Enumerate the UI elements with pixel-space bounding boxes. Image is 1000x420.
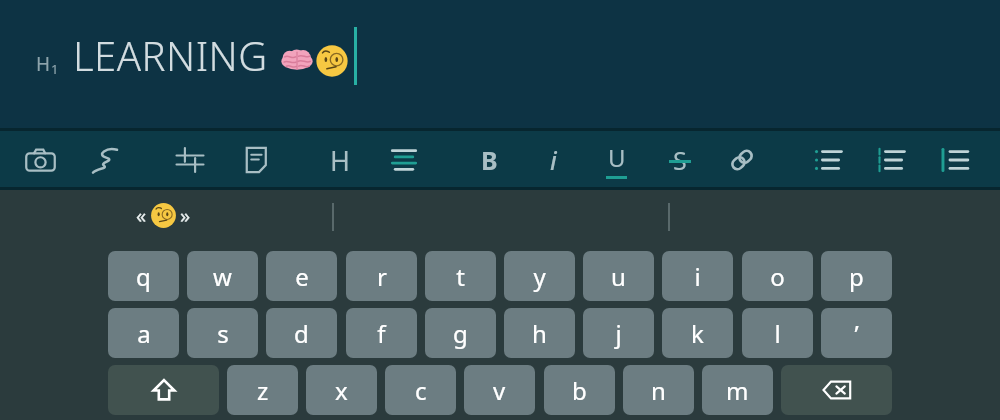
staticText: ’ [854, 317, 859, 350]
staticText: n [651, 374, 666, 407]
staticText: g [453, 317, 468, 350]
button[interactable]: k [662, 308, 733, 358]
staticText: b [572, 374, 587, 407]
button[interactable]: j [583, 308, 654, 358]
button[interactable]: u [583, 251, 654, 301]
staticText: S [673, 143, 687, 177]
staticText: m [726, 374, 749, 407]
button[interactable]: c [385, 365, 456, 415]
button[interactable]: o [742, 251, 813, 301]
button[interactable]: y [504, 251, 575, 301]
staticText: h [532, 317, 547, 350]
staticText: u [611, 260, 626, 293]
staticText: f [377, 317, 386, 350]
button[interactable]: g [425, 308, 496, 358]
button[interactable]: v [464, 365, 535, 415]
button[interactable]: Underline [590, 134, 642, 186]
button[interactable]: Backspace [781, 365, 892, 415]
button[interactable]: Link [716, 134, 768, 186]
button[interactable]: f [346, 308, 417, 358]
staticText: e [295, 260, 309, 293]
button[interactable]: m [702, 365, 773, 415]
button[interactable]: ’ [821, 308, 892, 358]
button[interactable]: Note [230, 134, 282, 186]
staticText: w [213, 260, 232, 293]
button[interactable]: e [266, 251, 337, 301]
button[interactable]: z [227, 365, 298, 415]
staticText: j [615, 317, 622, 350]
staticText: r [377, 260, 387, 293]
button[interactable]: Italic [527, 134, 579, 186]
staticText: p [849, 260, 864, 293]
staticText: H [36, 51, 51, 77]
button[interactable]: x [306, 365, 377, 415]
button[interactable]: Heading [314, 134, 366, 186]
staticText: i [550, 143, 557, 177]
button[interactable]: Bulleted list [802, 134, 854, 186]
button[interactable]: h [504, 308, 575, 358]
staticText: o [770, 260, 785, 293]
button[interactable]: a [108, 308, 179, 358]
staticText: y [533, 260, 546, 293]
button[interactable]: b [544, 365, 615, 415]
button[interactable]: Quote [929, 134, 981, 186]
staticText: B [481, 143, 498, 177]
staticText: i [694, 260, 701, 293]
staticText: a [137, 317, 151, 350]
button[interactable]: l [742, 308, 813, 358]
staticText: H [330, 142, 351, 179]
staticText: « [136, 202, 147, 229]
staticText: k [691, 317, 704, 350]
staticText: t [456, 260, 465, 293]
button[interactable]: p [821, 251, 892, 301]
button[interactable]: Adjust [164, 134, 216, 186]
staticText: » [180, 202, 191, 229]
staticText: c [415, 374, 427, 407]
button[interactable]: r [346, 251, 417, 301]
button[interactable]: d [266, 308, 337, 358]
button[interactable]: Numbered list [865, 134, 917, 186]
button[interactable]: Paragraph style [378, 134, 430, 186]
staticText: v [493, 374, 506, 407]
button[interactable]: Bold [463, 134, 515, 186]
button[interactable]: Strikethrough [654, 134, 706, 186]
button[interactable]: w [187, 251, 258, 301]
button[interactable]: Camera [14, 134, 66, 186]
button[interactable]: q [108, 251, 179, 301]
staticText: z [257, 374, 269, 407]
button[interactable]: Draw [79, 134, 131, 186]
staticText: x [335, 374, 348, 407]
staticText: q [136, 260, 151, 293]
staticText: U [608, 141, 626, 174]
staticText: s [217, 317, 229, 350]
button[interactable]: t [425, 251, 496, 301]
staticText: LEARNING [73, 28, 268, 82]
button[interactable]: s [187, 308, 258, 358]
button[interactable]: « [136, 202, 191, 229]
button[interactable]: i [662, 251, 733, 301]
staticText: 1 [51, 60, 59, 78]
button[interactable]: n [623, 365, 694, 415]
staticText: d [294, 317, 309, 350]
staticText: l [774, 317, 781, 350]
button[interactable]: Shift [108, 365, 219, 415]
